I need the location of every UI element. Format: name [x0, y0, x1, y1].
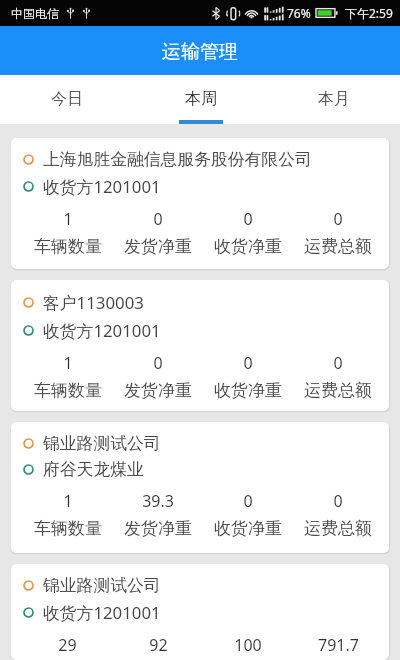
staticText: 29 — [58, 634, 77, 656]
staticText: 0 — [333, 352, 343, 374]
button[interactable]: 本月 — [267, 75, 400, 124]
staticText: 车辆数量 — [34, 518, 102, 539]
staticText: 收货方1201001 — [43, 601, 161, 624]
staticText: 0 — [153, 208, 163, 230]
staticText: 1 — [63, 208, 73, 230]
staticText: 0 — [333, 490, 343, 512]
staticText: 车辆数量 — [34, 380, 102, 401]
staticText: 锦业路测试公司 — [43, 433, 161, 454]
staticText: 发货净重 — [124, 518, 192, 539]
staticText: 收货净重 — [214, 518, 282, 539]
staticText: 76% — [287, 5, 311, 21]
staticText: 运费总额 — [304, 236, 372, 257]
button[interactable]: 本周 — [134, 75, 267, 124]
staticText: 1 — [63, 352, 73, 374]
staticText: 92 — [149, 634, 168, 656]
staticText: 发货净重 — [124, 380, 192, 401]
staticText: 791.7 — [318, 634, 359, 656]
staticText: 车辆数量 — [34, 236, 102, 257]
staticText: 0 — [243, 490, 253, 512]
button[interactable]: 锦业路测试公司 — [11, 422, 389, 553]
staticText: 府谷天龙煤业 — [43, 459, 144, 480]
button[interactable]: 今日 — [0, 75, 134, 124]
staticText: 本周 — [185, 89, 217, 109]
staticText: 收货方1201001 — [43, 175, 161, 198]
staticText: 39.3 — [142, 490, 174, 512]
staticText: 下午2:59 — [345, 5, 393, 21]
staticText: 客户1130003 — [43, 291, 144, 314]
staticText: 0 — [153, 352, 163, 374]
staticText: 1 — [63, 490, 73, 512]
staticText: 100 — [234, 634, 262, 656]
staticText: 收货方1201001 — [43, 319, 161, 342]
staticText: 发货净重 — [124, 236, 192, 257]
staticText: 0 — [243, 352, 253, 374]
staticText: 本月 — [318, 89, 350, 109]
button[interactable]: 锦业路测试公司 — [11, 564, 389, 660]
button[interactable]: 客户1130003 — [11, 280, 389, 411]
staticText: 锦业路测试公司 — [43, 575, 161, 596]
staticText: 运费总额 — [304, 518, 372, 539]
staticText: 运费总额 — [304, 380, 372, 401]
staticText: 上海旭胜金融信息服务股份有限公司 — [43, 149, 312, 170]
staticText: 收货净重 — [214, 236, 282, 257]
button[interactable]: 上海旭胜金融信息服务股份有限公司 — [11, 138, 389, 269]
staticText: 中国电信 — [11, 6, 59, 21]
staticText: 0 — [333, 208, 343, 230]
staticText: 0 — [243, 208, 253, 230]
staticText: 运输管理 — [162, 40, 238, 64]
staticText: 今日 — [51, 89, 83, 109]
staticText: 收货净重 — [214, 380, 282, 401]
